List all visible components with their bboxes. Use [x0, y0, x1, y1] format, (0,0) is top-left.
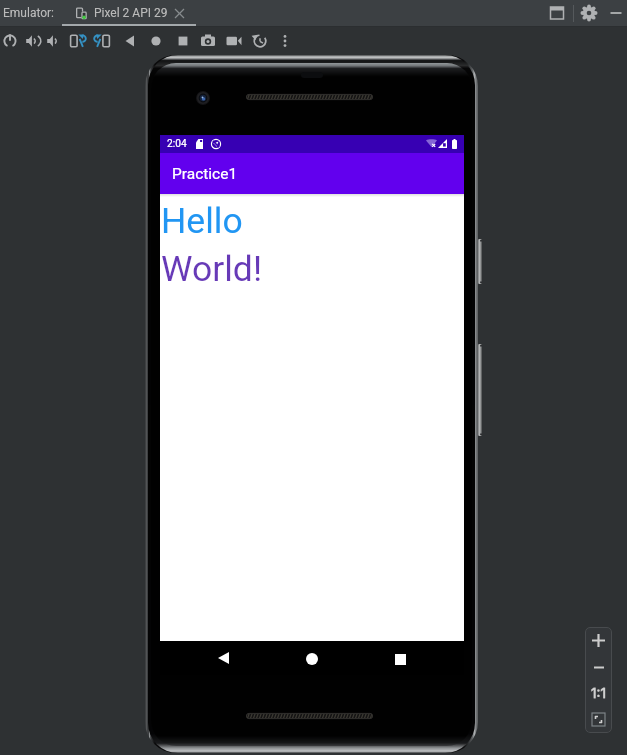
button[interactable]: Zoom in [585, 627, 612, 654]
button[interactable]: Recent apps [388, 647, 412, 671]
button[interactable]: Device [62, 0, 196, 26]
button[interactable]: Extended controls [249, 30, 271, 52]
button[interactable]: Power [0, 30, 21, 52]
button[interactable]: Screenshot [197, 30, 219, 52]
other: Device [76, 7, 89, 20]
button[interactable]: Volume up [21, 30, 43, 52]
staticText: Hello [161, 200, 243, 242]
button[interactable]: Window [546, 2, 568, 24]
button[interactable]: More [274, 30, 296, 52]
button[interactable]: Volume down [42, 30, 64, 52]
staticText: Practice1 [172, 165, 238, 183]
button[interactable]: Back [119, 30, 141, 52]
staticText: 2:04 [167, 138, 187, 150]
button[interactable]: Rotate right [92, 30, 114, 52]
staticText: Emulator: [3, 6, 55, 20]
button[interactable]: Actual size [585, 680, 612, 706]
button[interactable]: Back [211, 646, 235, 670]
button[interactable]: Record screen [223, 30, 245, 52]
button[interactable]: Zoom out [585, 654, 612, 680]
button[interactable]: Settings [578, 2, 600, 24]
button[interactable]: Rotate left [66, 30, 88, 52]
button[interactable]: Recents [172, 30, 194, 52]
staticText: 1:1 [591, 685, 606, 701]
button[interactable]: Fit to screen [585, 706, 612, 732]
other: Close [175, 9, 184, 18]
staticText: Pixel 2 API 29 [94, 6, 168, 20]
staticText: World! [161, 248, 263, 290]
button[interactable]: Home [300, 647, 324, 671]
button[interactable]: Minimize [605, 2, 627, 24]
button[interactable]: Home [145, 30, 167, 52]
